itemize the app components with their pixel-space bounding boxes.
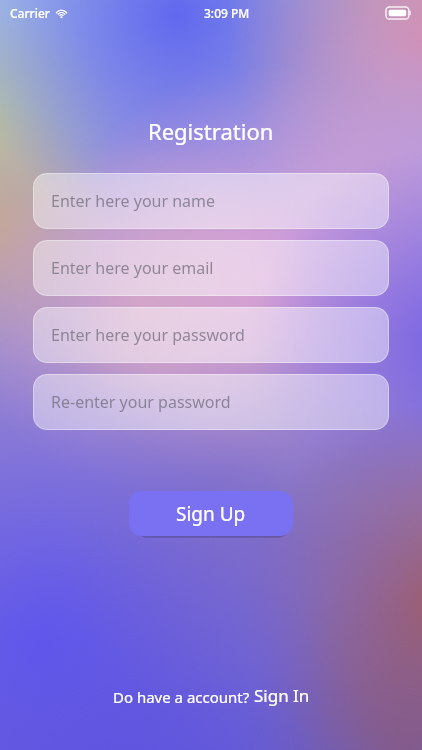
- staticText: Carrier: [10, 5, 50, 21]
- button[interactable]: Re-enter your password: [33, 374, 389, 430]
- staticText: Registration: [148, 116, 274, 146]
- staticText: Enter here your name: [51, 190, 216, 212]
- button[interactable]: Do have a account?: [97, 678, 326, 713]
- button[interactable]: Enter here your name: [33, 173, 389, 229]
- other: Wi-Fi signal: [55, 7, 68, 20]
- staticText: Re-enter your password: [51, 391, 231, 413]
- staticText: Do have a account?: [113, 687, 254, 707]
- staticText: Sign Up: [176, 501, 246, 527]
- button[interactable]: Enter here your email: [33, 240, 389, 296]
- button[interactable]: Enter here your password: [33, 307, 389, 363]
- staticText: Enter here your email: [51, 257, 214, 279]
- staticText: 3:09 PM: [204, 5, 250, 21]
- staticText: Enter here your password: [51, 324, 245, 346]
- staticText: Sign In: [254, 684, 310, 707]
- other: Battery: [386, 7, 412, 19]
- button[interactable]: Sign Up: [129, 491, 293, 536]
